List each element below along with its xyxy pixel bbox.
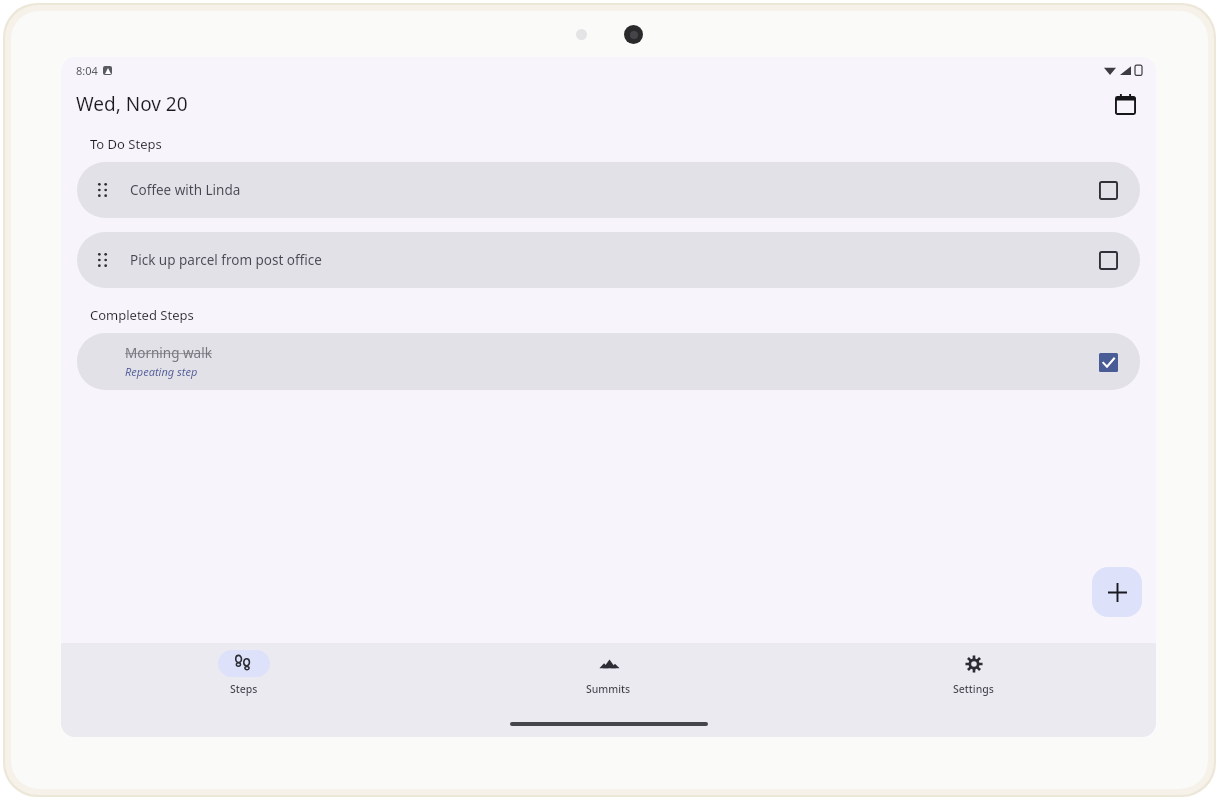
staticText: Coffee with Linda (130, 181, 241, 199)
button[interactable]: Reorder (91, 179, 113, 201)
staticText: Completed Steps (90, 306, 194, 324)
staticText: Morning walk (125, 344, 212, 362)
button[interactable]: Unchecked (1093, 175, 1123, 205)
button[interactable]: Pick date (1108, 87, 1142, 121)
button[interactable]: Steps (61, 650, 426, 696)
staticText: Pick up parcel from post office (130, 251, 322, 269)
button[interactable]: Summits (426, 650, 791, 696)
button[interactable]: Reorder (91, 249, 113, 271)
staticText: Wed, Nov 20 (76, 91, 188, 117)
button[interactable]: Reorder (77, 232, 1140, 288)
staticText: 8:04 (76, 63, 98, 78)
button[interactable]: Morning walk (77, 333, 1140, 390)
button[interactable]: Settings (791, 650, 1156, 696)
staticText: Settings (953, 682, 994, 696)
button[interactable]: Add step (1092, 567, 1142, 617)
button[interactable]: Unchecked (1093, 245, 1123, 275)
staticText: Repeating step (125, 364, 198, 379)
staticText: To Do Steps (90, 135, 162, 153)
button[interactable]: Checked (1093, 347, 1123, 377)
staticText: Summits (586, 682, 631, 696)
staticText: Steps (230, 682, 258, 696)
button[interactable]: Reorder (77, 162, 1140, 218)
